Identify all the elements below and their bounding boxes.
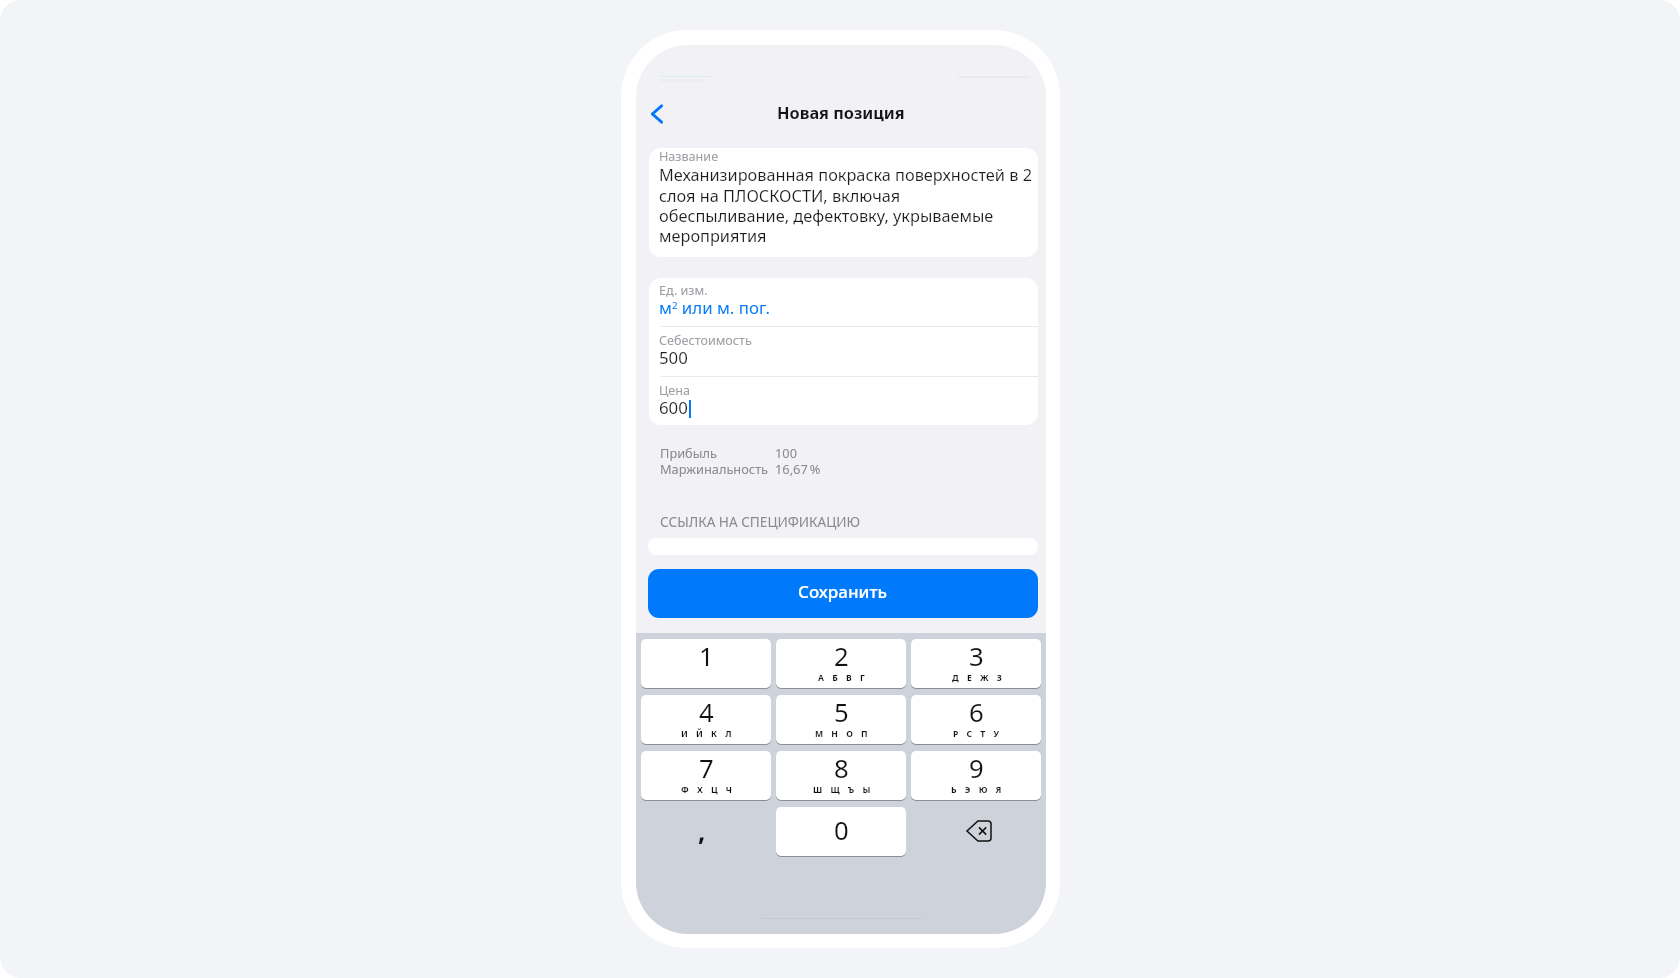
staticText: Д Е Ж З <box>952 672 1005 684</box>
staticText: Новая позиция <box>777 102 905 124</box>
staticText: И Й К Л <box>681 728 735 740</box>
staticText: 1 <box>699 639 714 674</box>
staticText: ССЫЛКА НА СПЕЦИФИКАЦИЮ <box>660 512 861 531</box>
staticText: 6 <box>969 695 984 730</box>
staticText: Р С Т У <box>953 728 1003 740</box>
button[interactable]: 0 <box>776 807 906 856</box>
staticText: Сохранить <box>798 580 888 603</box>
staticText: Ш Щ Ъ Ы <box>813 784 874 796</box>
staticText: 600 <box>659 396 688 419</box>
staticText: Прибыль <box>660 444 775 461</box>
button[interactable]: Backspace <box>914 807 1044 855</box>
staticText: Себестоимость <box>659 332 752 349</box>
button[interactable]: 2 <box>776 639 906 688</box>
staticText: 4 <box>699 695 714 730</box>
button[interactable]: 8 <box>776 751 906 800</box>
staticText: 5 <box>834 695 849 730</box>
button[interactable]: , <box>641 807 771 855</box>
staticText: М Н О П <box>815 728 871 740</box>
staticText: 2 <box>834 639 849 674</box>
staticText: 7 <box>699 751 714 786</box>
button[interactable]: Себестоимость <box>649 328 1038 377</box>
button[interactable]: 1 <box>641 639 771 688</box>
staticText: А Б В Г <box>818 672 868 684</box>
staticText: Название <box>659 148 719 165</box>
staticText: Маржинальность <box>660 460 775 477</box>
staticText: 0 <box>834 813 849 848</box>
staticText: 8 <box>834 751 849 786</box>
button[interactable]: Ед. изм. <box>649 278 1038 327</box>
button[interactable]: 7 <box>641 751 771 800</box>
button[interactable]: 4 <box>641 695 771 744</box>
staticText: 16,67 % <box>775 460 821 477</box>
button[interactable]: Название <box>649 148 1038 257</box>
staticText: , <box>698 813 706 848</box>
button[interactable]: 9 <box>911 751 1041 800</box>
button[interactable]: Сохранить <box>648 569 1038 618</box>
staticText: Ед. изм. <box>659 282 708 299</box>
staticText: м2 или м. пог. <box>659 296 771 319</box>
staticText: 500 <box>659 346 688 369</box>
button[interactable]: Цена <box>649 378 1038 425</box>
staticText: Механизированная покраска поверхностей в… <box>659 164 1033 247</box>
button[interactable]: Back <box>636 92 679 136</box>
staticText: 9 <box>969 751 984 786</box>
button[interactable]: 5 <box>776 695 906 744</box>
staticText: 100 <box>775 444 797 461</box>
staticText: Цена <box>659 382 690 399</box>
button[interactable]: 3 <box>911 639 1041 688</box>
staticText: Ь Э Ю Я <box>951 784 1005 796</box>
button[interactable]: 6 <box>911 695 1041 744</box>
staticText: 3 <box>969 639 984 674</box>
staticText: Ф Х Ц Ч <box>681 784 736 796</box>
